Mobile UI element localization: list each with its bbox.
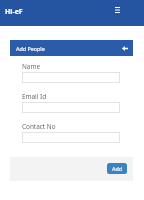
staticText: Email Id [22, 92, 47, 101]
button[interactable]: Back [120, 43, 130, 53]
button[interactable]: Menu [109, 2, 125, 18]
staticText: Hi-eF [5, 7, 23, 17]
staticText: Add [112, 165, 122, 172]
staticText: Add People [16, 45, 45, 52]
button[interactable] [22, 132, 120, 143]
button[interactable] [22, 102, 120, 113]
button[interactable]: Add [107, 163, 127, 174]
staticText: Contact No [22, 122, 56, 131]
staticText: Name [22, 62, 41, 71]
button[interactable] [22, 72, 120, 83]
button[interactable]: Add People [10, 40, 133, 56]
